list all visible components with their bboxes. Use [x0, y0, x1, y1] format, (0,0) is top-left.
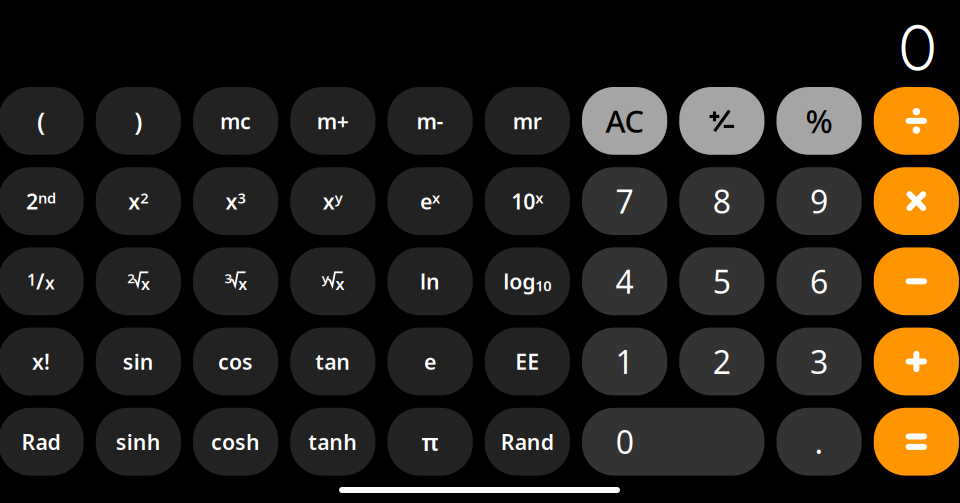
button[interactable]	[193, 167, 278, 235]
button[interactable]	[0, 247, 84, 315]
button[interactable]	[290, 328, 375, 395]
staticText: 3	[225, 269, 233, 287]
button[interactable]	[96, 328, 181, 395]
button[interactable]	[0, 167, 84, 235]
button[interactable]	[96, 87, 181, 155]
staticText: (	[37, 104, 45, 138]
staticText: .	[815, 420, 824, 463]
button[interactable]: Minus	[874, 247, 959, 315]
button[interactable]	[193, 408, 278, 476]
staticText: %	[806, 100, 833, 142]
staticText: x	[336, 273, 345, 294]
staticText: x	[238, 273, 247, 294]
staticText: e	[424, 347, 436, 376]
button[interactable]	[387, 87, 473, 155]
staticText: Rand	[501, 427, 554, 456]
staticText: 8	[713, 180, 731, 222]
staticText: 7	[616, 180, 634, 222]
button[interactable]	[582, 87, 667, 155]
staticText: 2	[713, 340, 731, 383]
staticText: 2	[127, 269, 135, 287]
button[interactable]	[679, 328, 764, 395]
staticText: 5	[713, 260, 731, 303]
staticText: ln	[420, 267, 440, 295]
staticText: 1/x	[27, 267, 55, 295]
button[interactable]	[485, 328, 570, 395]
button[interactable]	[290, 408, 375, 476]
staticText: sin	[123, 347, 154, 376]
button[interactable]: Toggle sign	[679, 87, 764, 155]
button[interactable]	[485, 408, 570, 476]
button[interactable]: Multiply	[874, 167, 959, 235]
staticText: EE	[515, 347, 539, 376]
staticText: tan	[315, 347, 350, 376]
staticText: cosh	[211, 427, 260, 456]
button[interactable]	[193, 247, 278, 315]
staticText: mr	[513, 107, 542, 135]
button[interactable]	[0, 328, 84, 395]
staticText: y	[322, 269, 329, 287]
button[interactable]	[96, 167, 181, 235]
button[interactable]	[290, 87, 375, 155]
staticText: 9	[810, 180, 828, 222]
button[interactable]	[582, 247, 667, 315]
staticText: 2nd	[26, 187, 56, 215]
staticText: x	[141, 273, 150, 294]
button[interactable]	[582, 408, 764, 476]
button[interactable]	[776, 328, 862, 395]
staticText: 3	[810, 340, 828, 383]
button[interactable]	[485, 167, 570, 235]
staticText: Rad	[22, 427, 61, 456]
button[interactable]	[96, 247, 181, 315]
staticText: xy	[323, 187, 343, 215]
staticText: )	[134, 104, 142, 138]
button[interactable]: Equals	[874, 408, 959, 476]
staticText: m+	[317, 107, 349, 135]
staticText: 4	[616, 260, 634, 303]
staticText: cos	[218, 347, 253, 376]
button[interactable]	[582, 167, 667, 235]
button[interactable]	[679, 247, 764, 315]
staticText: 10x	[511, 187, 543, 215]
button[interactable]	[0, 408, 84, 476]
staticText: ex	[420, 187, 440, 215]
button[interactable]	[485, 87, 570, 155]
staticText: π	[422, 426, 439, 458]
staticText: 0	[616, 420, 634, 463]
staticText: x!	[32, 347, 50, 376]
button[interactable]	[387, 247, 473, 315]
button[interactable]	[387, 408, 473, 476]
button[interactable]	[0, 87, 84, 155]
button[interactable]: Plus	[874, 328, 959, 395]
staticText: x2	[128, 187, 148, 215]
staticText: mc	[220, 107, 251, 135]
button[interactable]	[290, 167, 375, 235]
button[interactable]	[290, 247, 375, 315]
button[interactable]	[776, 247, 862, 315]
staticText: tanh	[308, 427, 357, 456]
staticText: 0	[899, 10, 936, 86]
staticText: x3	[226, 187, 246, 215]
button[interactable]: Divide	[874, 87, 959, 155]
button[interactable]	[776, 167, 862, 235]
button[interactable]	[679, 167, 764, 235]
staticText: 1	[616, 340, 634, 383]
staticText: log10	[503, 267, 551, 295]
button[interactable]	[485, 247, 570, 315]
button[interactable]	[776, 87, 862, 155]
button[interactable]	[387, 167, 473, 235]
staticText: AC	[606, 100, 644, 141]
button[interactable]	[193, 328, 278, 395]
button[interactable]	[193, 87, 278, 155]
button[interactable]	[776, 408, 862, 476]
button[interactable]	[96, 408, 181, 476]
button[interactable]	[387, 328, 473, 395]
staticText: sinh	[116, 427, 161, 456]
staticText: 6	[810, 260, 828, 303]
staticText: m-	[417, 107, 444, 135]
button[interactable]	[582, 328, 667, 395]
